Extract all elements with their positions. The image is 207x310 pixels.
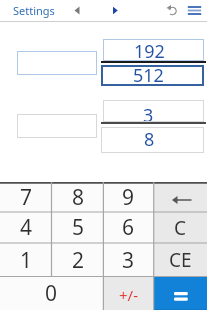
button[interactable]: +/-: [103, 276, 153, 310]
button[interactable]: 5: [52, 212, 104, 243]
staticText: 512: [133, 63, 164, 84]
staticText: 7: [20, 183, 33, 212]
staticText: 1: [20, 246, 33, 275]
staticText: 6: [122, 213, 135, 242]
staticText: 3: [122, 246, 135, 275]
staticText: 192: [134, 39, 165, 61]
button[interactable]: 7: [0, 182, 52, 212]
staticText: 4: [20, 213, 33, 242]
staticText: 0: [45, 279, 58, 308]
button[interactable]: 192: [103, 39, 204, 61]
button[interactable]: [104, 0, 126, 21]
button[interactable]: 9: [103, 182, 153, 212]
button[interactable]: [162, 0, 183, 21]
button[interactable]: 1: [0, 243, 52, 277]
button[interactable]: [17, 51, 97, 75]
staticText: 2: [72, 246, 85, 275]
button[interactable]: 3: [103, 100, 204, 122]
button[interactable]: C: [154, 212, 207, 243]
staticText: 8: [144, 127, 155, 152]
staticText: 8: [72, 183, 85, 212]
staticText: +/-: [119, 285, 138, 305]
button[interactable]: [66, 0, 88, 21]
button[interactable]: [17, 114, 97, 138]
button[interactable]: [184, 0, 205, 21]
button[interactable]: 512: [101, 65, 204, 86]
button[interactable]: [154, 182, 207, 212]
button[interactable]: 0: [0, 276, 103, 310]
button[interactable]: 6: [103, 212, 153, 243]
staticText: 9: [122, 183, 135, 212]
button[interactable]: Settings: [4, 0, 64, 21]
button[interactable]: 8: [52, 182, 104, 212]
button[interactable]: 4: [0, 212, 52, 243]
staticText: 5: [72, 213, 85, 242]
button[interactable]: 8: [101, 127, 204, 153]
button[interactable]: CE: [154, 243, 207, 277]
button[interactable]: 3: [103, 243, 153, 277]
button[interactable]: 2: [52, 243, 104, 277]
staticText: CE: [169, 247, 192, 273]
button[interactable]: [154, 276, 207, 310]
staticText: Settings: [13, 3, 55, 18]
staticText: 3: [143, 103, 154, 125]
staticText: C: [174, 215, 187, 241]
